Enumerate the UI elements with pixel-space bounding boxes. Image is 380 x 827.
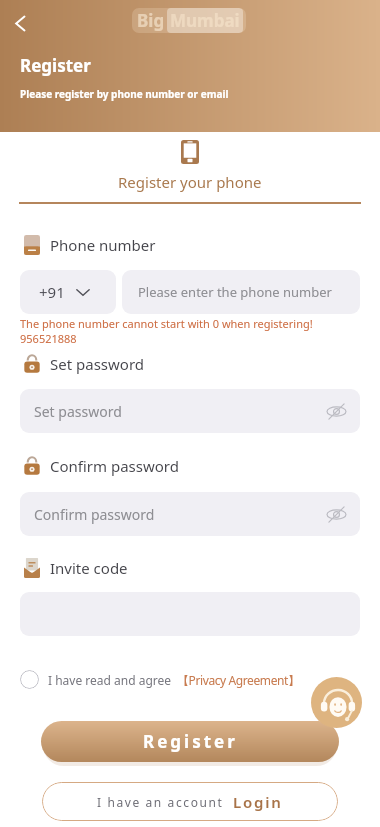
- button[interactable]: Show password: [324, 502, 348, 526]
- button[interactable]: Customer service: [311, 677, 362, 728]
- button[interactable]: Set password: [20, 389, 360, 433]
- staticText: I have an account: [97, 794, 224, 810]
- staticText: Confirm password: [34, 505, 155, 524]
- button[interactable]: I have an account: [42, 782, 338, 821]
- staticText: Phone number: [50, 235, 156, 255]
- staticText: I have read and agree: [48, 672, 172, 688]
- button[interactable]: Confirm password: [20, 492, 360, 536]
- staticText: Please register by phone number or email: [20, 87, 229, 101]
- staticText: 【Privacy Agreement】: [177, 672, 300, 688]
- staticText: +91: [39, 282, 65, 302]
- staticText: The phone number cannot start with 0 whe…: [20, 316, 313, 346]
- staticText: Please enter the phone number: [138, 283, 332, 301]
- staticText: Big: [137, 9, 165, 32]
- staticText: Mumbai: [170, 9, 240, 32]
- button[interactable]: Register: [41, 721, 339, 762]
- staticText: Confirm password: [50, 456, 179, 476]
- staticText: Set password: [50, 354, 145, 374]
- button[interactable]: Show password: [324, 399, 348, 423]
- staticText: Invite code: [50, 558, 128, 578]
- staticText: Register: [143, 730, 238, 753]
- staticText: Register your phone: [118, 172, 262, 192]
- button[interactable]: I have read and agree: [20, 670, 300, 689]
- button[interactable]: +91: [20, 270, 116, 314]
- staticText: Set password: [34, 402, 122, 421]
- staticText: Register: [20, 54, 91, 77]
- staticText: Login: [233, 792, 283, 812]
- button[interactable]: Please enter the phone number: [122, 270, 360, 314]
- button[interactable]: Back: [2, 5, 38, 41]
